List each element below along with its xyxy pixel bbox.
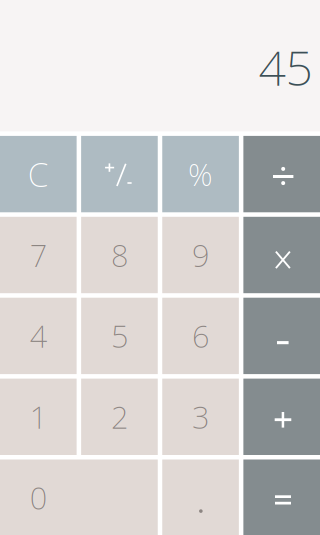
button[interactable]: Divide xyxy=(243,136,320,212)
staticText: 6 xyxy=(192,315,209,356)
button[interactable]: Two xyxy=(81,379,158,455)
staticText: C xyxy=(28,152,49,196)
button[interactable]: Four xyxy=(0,298,77,374)
button[interactable]: Three xyxy=(162,379,239,455)
staticText: 1 xyxy=(30,396,47,437)
staticText: % xyxy=(188,154,213,194)
button[interactable]: Add xyxy=(243,379,320,455)
staticText: 0 xyxy=(30,477,47,518)
button[interactable]: Clear xyxy=(0,136,77,212)
staticText: 8 xyxy=(111,235,128,275)
button[interactable]: Subtract xyxy=(243,298,320,374)
staticText: 3 xyxy=(192,396,209,437)
button[interactable]: Zero xyxy=(0,459,158,535)
staticText: 4 xyxy=(30,315,47,356)
button[interactable]: Equals xyxy=(243,459,320,535)
staticText: 9 xyxy=(192,235,209,275)
button[interactable]: Plus minus xyxy=(81,136,158,212)
button[interactable]: Seven xyxy=(0,217,77,293)
staticText: 7 xyxy=(30,235,47,275)
staticText: 5 xyxy=(111,315,128,356)
button[interactable]: Decimal point xyxy=(162,459,239,535)
staticText: 2 xyxy=(111,396,128,437)
button[interactable]: Five xyxy=(81,298,158,374)
button[interactable]: One xyxy=(0,379,77,455)
button[interactable]: Six xyxy=(162,298,239,374)
button[interactable]: Nine xyxy=(162,217,239,293)
button[interactable]: Eight xyxy=(81,217,158,293)
staticText: 45 xyxy=(258,35,312,99)
button[interactable]: Multiply xyxy=(243,217,320,293)
button[interactable]: Percent xyxy=(162,136,239,212)
